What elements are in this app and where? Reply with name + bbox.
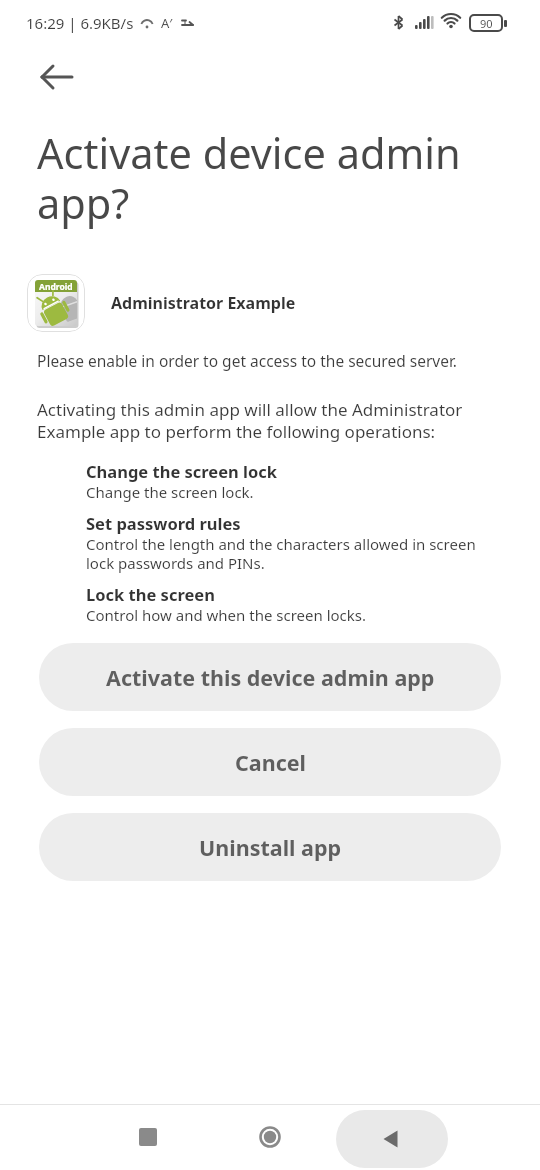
staticText: Uninstall app (199, 833, 342, 862)
button[interactable] (124, 1113, 172, 1161)
staticText: Control the length and the characters al… (86, 534, 476, 573)
staticText: Change the screen lock (86, 460, 278, 482)
staticText: Please enable in order to get access to … (37, 350, 458, 371)
staticText: 90 (480, 16, 493, 31)
button[interactable] (246, 1113, 294, 1161)
staticText: Activate this device admin app (106, 663, 435, 692)
staticText: Cancel (235, 748, 306, 777)
button[interactable] (33, 53, 81, 101)
staticText: Activating this admin app will allow the… (37, 398, 463, 443)
staticText: Administrator Example (111, 292, 296, 314)
staticText: Activate device admin app? (37, 125, 461, 231)
button[interactable]: Cancel (39, 728, 501, 796)
staticText: Control how and when the screen locks. (86, 605, 366, 625)
staticText: A′ (161, 14, 173, 32)
button[interactable] (336, 1110, 448, 1168)
staticText: 16:29 | 6.9KB/s (26, 13, 134, 33)
staticText: Android (39, 281, 73, 293)
staticText: Lock the screen (86, 583, 215, 605)
button[interactable]: Uninstall app (39, 813, 501, 881)
staticText: Set password rules (86, 512, 241, 534)
button[interactable]: Activate this device admin app (39, 643, 501, 711)
staticText: Change the screen lock. (86, 482, 254, 502)
